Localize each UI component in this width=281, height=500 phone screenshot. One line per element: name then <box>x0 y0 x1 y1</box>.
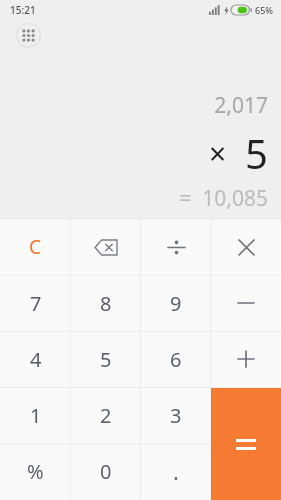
staticText: 15:21 <box>10 3 36 17</box>
staticText: 4 <box>30 346 42 373</box>
button[interactable]: Minus <box>211 275 281 331</box>
staticText: 2 <box>100 402 112 429</box>
staticText: × <box>209 133 227 174</box>
button[interactable]: 4 <box>0 331 71 387</box>
staticText: C <box>29 234 42 260</box>
button[interactable]: Equals <box>211 388 281 500</box>
button[interactable]: 0 <box>71 443 141 499</box>
staticText: 9 <box>170 290 182 317</box>
button[interactable]: Backspace <box>71 219 141 275</box>
staticText: 6 <box>170 346 182 373</box>
staticText: 5 <box>245 126 268 180</box>
button[interactable]: 6 <box>141 331 211 387</box>
button[interactable]: Apps <box>16 23 41 48</box>
staticText: 3 <box>170 402 182 429</box>
button[interactable]: 1 <box>0 387 71 443</box>
staticText: 7 <box>30 290 42 317</box>
staticText: 65% <box>255 4 273 16</box>
button[interactable]: 2 <box>71 387 141 443</box>
button[interactable]: 5 <box>71 331 141 387</box>
button[interactable]: 9 <box>141 275 211 331</box>
staticText: 5 <box>100 346 112 373</box>
staticText: % <box>27 458 44 485</box>
button[interactable]: C <box>0 219 71 275</box>
button[interactable]: . <box>141 443 211 499</box>
staticText: 2,017 <box>214 91 268 120</box>
button[interactable]: Multiply <box>211 219 281 275</box>
staticText: . <box>173 456 179 486</box>
button[interactable]: Divide <box>141 219 211 275</box>
button[interactable]: 3 <box>141 387 211 443</box>
staticText: 0 <box>100 458 112 485</box>
button[interactable]: % <box>0 443 71 499</box>
staticText: = 10,085 <box>179 184 268 213</box>
button[interactable]: 7 <box>0 275 71 331</box>
button[interactable]: Plus <box>211 331 281 387</box>
staticText: 8 <box>100 290 112 317</box>
staticText: 1 <box>30 402 42 429</box>
button[interactable]: 8 <box>71 275 141 331</box>
